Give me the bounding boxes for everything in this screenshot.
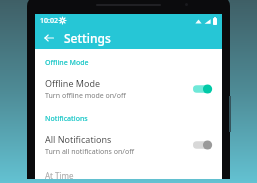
- button[interactable]: Offline Mode: [35, 75, 222, 103]
- staticText: All Notifications: [45, 133, 112, 145]
- button[interactable]: Back: [40, 29, 58, 47]
- staticText: Offline Mode: [45, 58, 89, 68]
- staticText: 10:02: [40, 16, 58, 26]
- staticText: Notifications: [45, 114, 88, 124]
- staticText: Offline Mode: [45, 77, 101, 89]
- button[interactable]: Toggle off: [191, 138, 213, 152]
- button[interactable]: Toggle on: [191, 82, 213, 96]
- staticText: At Time: [45, 170, 74, 179]
- button[interactable]: All Notifications: [35, 131, 222, 159]
- staticText: Turn offline mode on/off: [45, 91, 126, 101]
- staticText: Settings: [64, 30, 111, 46]
- staticText: Turn all notifications on/off: [45, 147, 134, 157]
